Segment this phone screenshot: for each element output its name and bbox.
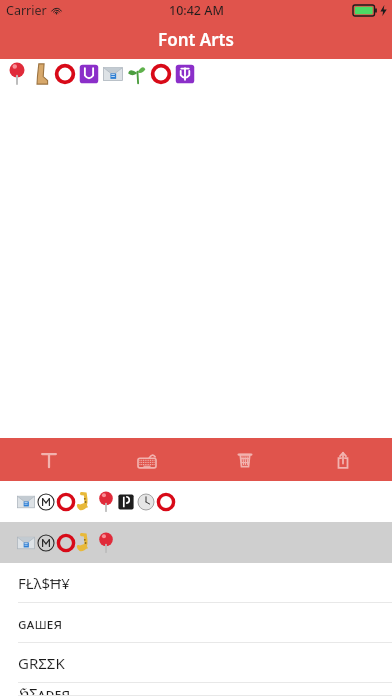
button[interactable]: FŁλ$Ħ¥ <box>0 563 392 603</box>
button[interactable]: ℌΣᴀᴅᴇя <box>0 683 392 696</box>
staticText: ℌΣᴀᴅᴇя <box>18 683 71 695</box>
staticText: 10:42 AM <box>169 2 224 19</box>
staticText: ɢᴀꟺᴇя <box>18 613 63 633</box>
button[interactable]: GRΣΣK <box>0 643 392 683</box>
staticText: Carrier <box>6 2 47 19</box>
staticText: GRΣΣK <box>18 653 65 673</box>
staticText: Font Arts <box>158 28 234 51</box>
button[interactable]: Delete <box>196 438 294 481</box>
button[interactable]: Share <box>294 438 392 481</box>
button[interactable] <box>0 522 392 563</box>
staticText: FŁλ$Ħ¥ <box>18 573 70 593</box>
button[interactable]: ɢᴀꟺᴇя <box>0 603 392 643</box>
button[interactable] <box>0 481 392 522</box>
button[interactable]: Keyboard <box>98 438 196 481</box>
button[interactable]: Text style <box>0 438 98 481</box>
